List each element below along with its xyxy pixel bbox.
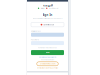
staticText: بوابة الطالب (40, 7, 44, 9)
staticText: Terms of Service · Privacy Policy (36, 67, 58, 69)
staticText: Sign In (45, 52, 49, 53)
staticText: Email address (31, 30, 41, 32)
staticText: Need help signing in? (40, 59, 54, 61)
button[interactable]: Sign in with Google (31, 22, 64, 27)
staticText: Create a new account (40, 63, 55, 65)
button[interactable]: Sign In (31, 50, 64, 55)
staticText: Remember me on this device (38, 47, 57, 49)
staticText: النهضة (42, 4, 52, 7)
button[interactable]: Create a new account (37, 62, 58, 66)
staticText: Please sign in to continue to your dashb… (32, 18, 62, 19)
staticText: Forgot your password? (38, 56, 56, 58)
staticText: Password (31, 39, 39, 41)
staticText: الخدمات الإلكترونية (48, 7, 57, 9)
staticText: Sign in with Google (43, 24, 54, 26)
staticText: Sign In (42, 13, 52, 17)
